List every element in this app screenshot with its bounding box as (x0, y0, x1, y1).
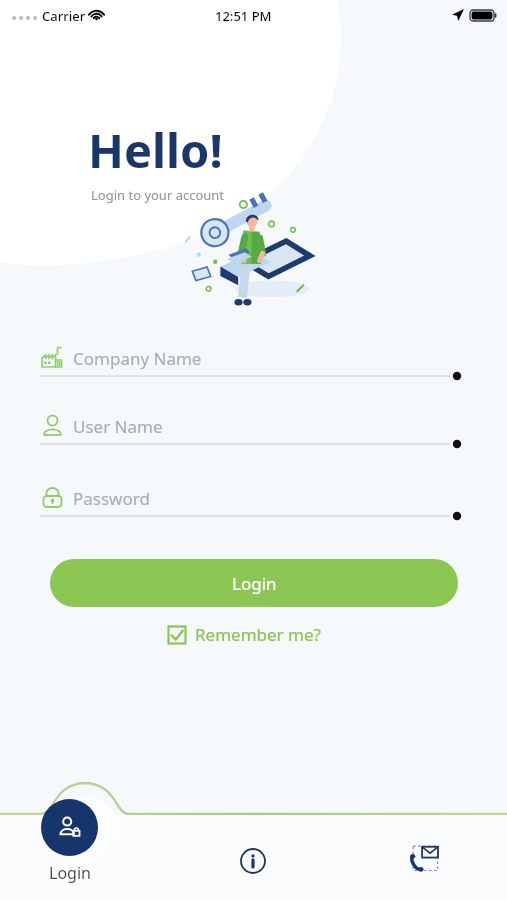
button[interactable]: Login (50, 559, 458, 607)
staticText: 12:51 PM (215, 7, 272, 25)
button[interactable]: Login (41, 799, 98, 884)
staticText: Password (73, 487, 150, 510)
staticText: Login (49, 862, 91, 884)
button[interactable]: Contact us (402, 836, 448, 882)
staticText: Remember me? (195, 623, 321, 646)
button[interactable]: Password (40, 482, 468, 524)
staticText: Login to your account (91, 186, 225, 204)
button[interactable]: Information (232, 840, 274, 882)
staticText: Hello! (88, 118, 223, 182)
button[interactable]: Remember me? (165, 621, 323, 648)
button[interactable]: User Name (40, 410, 468, 452)
button[interactable]: Company Name (40, 342, 468, 384)
staticText: Login (232, 572, 277, 595)
staticText: User Name (73, 415, 163, 438)
staticText: Carrier (42, 7, 86, 25)
staticText: Company Name (73, 347, 202, 370)
